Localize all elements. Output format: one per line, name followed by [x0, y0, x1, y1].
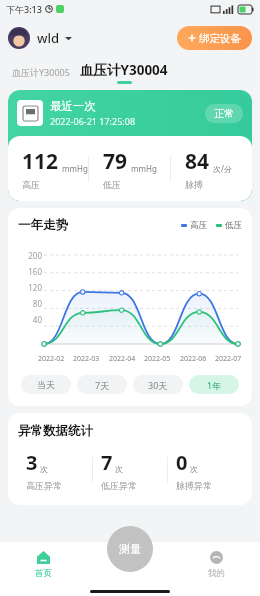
staticText: 30天: [148, 379, 168, 391]
staticText: 84: [185, 147, 210, 176]
staticText: 脉搏: [185, 179, 203, 190]
staticText: mmHg: [131, 163, 157, 174]
staticText: 200: [18, 250, 42, 261]
staticText: 7: [101, 449, 113, 476]
staticText: 绑定设备: [199, 32, 241, 45]
staticText: 120: [18, 282, 42, 293]
staticText: 一年走势: [18, 217, 68, 233]
button[interactable]: 30天: [133, 375, 183, 394]
button[interactable]: 绑定设备: [177, 26, 252, 50]
staticText: 正常: [214, 107, 234, 120]
staticText: 我的: [208, 568, 225, 579]
staticText: 79: [103, 147, 128, 176]
staticText: 2022-07: [215, 354, 242, 364]
staticText: 2022-06: [180, 354, 207, 364]
staticText: 测量: [119, 542, 141, 556]
staticText: wld: [37, 29, 60, 47]
staticText: 当天: [37, 379, 55, 390]
button[interactable]: 1年: [189, 375, 239, 394]
button[interactable]: 首页: [0, 542, 86, 586]
staticText: 次/分: [213, 163, 232, 174]
staticText: 血压计Y30004: [80, 61, 168, 79]
button[interactable]: 当天: [21, 375, 71, 394]
staticText: 血压计Y30005: [12, 66, 70, 78]
button[interactable]: 我的: [173, 542, 260, 586]
staticText: 2022-03: [73, 354, 100, 364]
staticText: 低压: [103, 179, 121, 190]
staticText: 次: [40, 464, 48, 474]
staticText: 2022-05: [144, 354, 171, 364]
button[interactable]: 7天: [77, 375, 127, 394]
staticText: 2022-04: [109, 354, 136, 364]
staticText: 2022-06-21 17:25:08: [50, 115, 136, 127]
staticText: 异常数据统计: [18, 423, 93, 439]
staticText: 首页: [35, 568, 52, 579]
button[interactable]: 正常: [205, 104, 243, 123]
staticText: 次: [190, 464, 198, 474]
staticText: 80: [18, 298, 42, 309]
staticText: 低压异常: [101, 480, 137, 491]
button[interactable]: 血压计Y30004: [80, 61, 168, 84]
staticText: 0: [176, 449, 188, 476]
staticText: 最近一次: [50, 99, 96, 113]
staticText: 112: [22, 147, 59, 176]
staticText: 次: [115, 464, 123, 474]
staticText: 7天: [95, 379, 110, 391]
staticText: 高压: [22, 179, 40, 190]
staticText: 脉搏异常: [176, 480, 212, 491]
staticText: mmHg: [62, 163, 88, 174]
button[interactable]: [8, 27, 30, 49]
staticText: 高压异常: [26, 480, 62, 491]
button[interactable]: wld: [37, 29, 72, 47]
staticText: 160: [18, 266, 42, 277]
staticText: 低压: [225, 220, 242, 231]
staticText: 40: [18, 314, 42, 325]
button[interactable]: 测量: [107, 526, 153, 572]
staticText: 2022-02: [38, 354, 65, 364]
button[interactable]: 血压计Y30005: [12, 66, 80, 78]
staticText: 高压: [190, 220, 207, 231]
staticText: 1年: [207, 379, 222, 391]
staticText: 3: [26, 449, 38, 476]
staticText: 下午3:13: [6, 3, 42, 15]
